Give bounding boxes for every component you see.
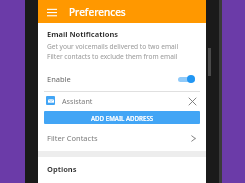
button[interactable]: Enable email notifications toggle: [177, 74, 197, 84]
staticText: Get your voicemails delivered to two ema…: [47, 42, 202, 51]
button[interactable]: Remove email address: [186, 95, 198, 107]
staticText: Enable: [47, 74, 71, 84]
button[interactable]: Enable: [38, 71, 206, 87]
staticText: Assistant: [62, 96, 93, 106]
button[interactable]: Assistant: [38, 92, 206, 109]
staticText: Filter contacts to exclude them from ema…: [47, 52, 202, 61]
button[interactable]: ADD EMAIL ADDRESS: [44, 111, 200, 124]
staticText: Options: [47, 164, 77, 174]
staticText: Email Notifications: [47, 29, 119, 39]
staticText: ADD EMAIL ADDRESS: [91, 114, 154, 122]
staticText: Filter Contacts: [47, 133, 98, 143]
button[interactable]: Filter Contacts: [38, 130, 206, 146]
button[interactable]: Open navigation menu: [45, 5, 59, 19]
staticText: Preferences: [69, 5, 126, 19]
